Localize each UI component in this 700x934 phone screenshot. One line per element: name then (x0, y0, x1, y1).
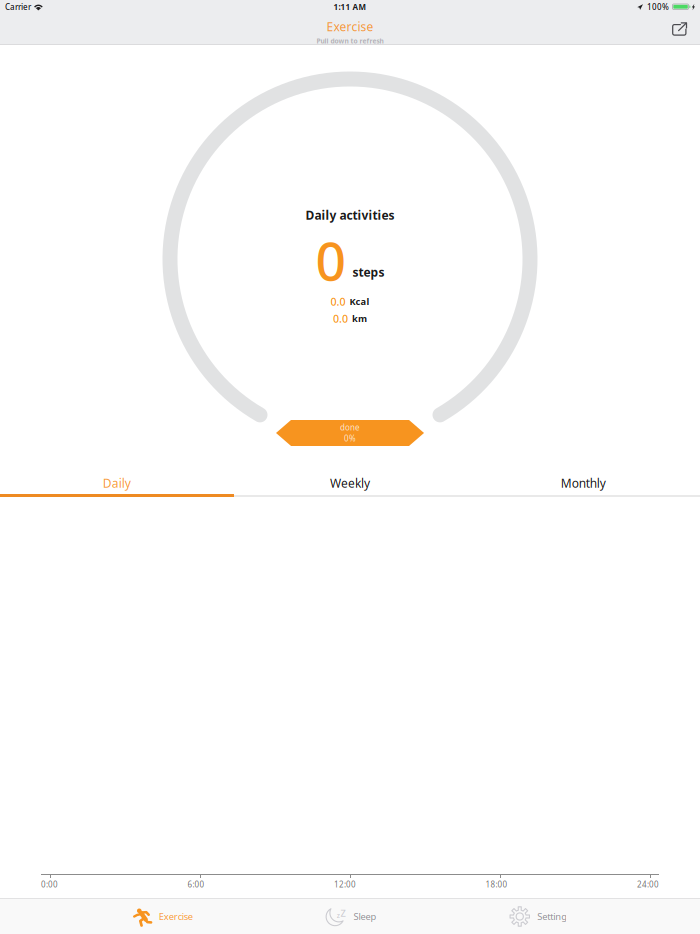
staticText: done (340, 422, 360, 433)
staticText: 100% (647, 2, 669, 12)
staticText: Daily activities (305, 207, 394, 223)
button[interactable]: Daily (0, 472, 233, 494)
staticText: 0.0 (330, 294, 345, 309)
staticText: 18:00 (485, 879, 507, 890)
staticText: Exercise (159, 910, 193, 923)
button[interactable]: Exercise (133, 899, 193, 934)
button[interactable]: Share (660, 15, 700, 44)
staticText: Pull down to refresh (316, 37, 383, 45)
staticText: z (337, 911, 340, 920)
staticText: Daily (103, 475, 131, 491)
staticText: Kcal (349, 295, 369, 308)
staticText: Sleep (353, 910, 376, 923)
staticText: Weekly (330, 475, 370, 491)
staticText: 6:00 (187, 879, 204, 890)
button[interactable]: Monthly (467, 472, 700, 494)
staticText: 0.0 (333, 311, 348, 326)
button[interactable]: Setting (509, 899, 567, 934)
button[interactable]: z (325, 899, 376, 934)
staticText: Carrier (5, 2, 31, 12)
staticText: Monthly (561, 475, 606, 491)
staticText: Z (340, 907, 345, 919)
staticText: Exercise (326, 18, 373, 34)
staticText: 0 (315, 225, 346, 295)
staticText: Setting (537, 910, 567, 923)
staticText: 24:00 (637, 879, 659, 890)
staticText: 12:00 (334, 879, 356, 890)
staticText: km (352, 312, 367, 325)
staticText: 0:00 (41, 879, 58, 890)
button[interactable]: Weekly (233, 472, 467, 494)
staticText: 1:11 AM (333, 2, 366, 12)
staticText: 0% (344, 433, 356, 444)
staticText: steps (352, 264, 384, 280)
